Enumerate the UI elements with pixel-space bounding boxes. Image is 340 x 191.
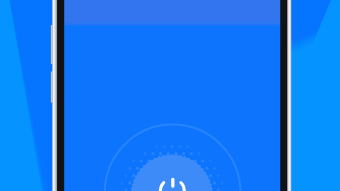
button[interactable]: Boost phone, tap power button: [0, 0, 340, 191]
